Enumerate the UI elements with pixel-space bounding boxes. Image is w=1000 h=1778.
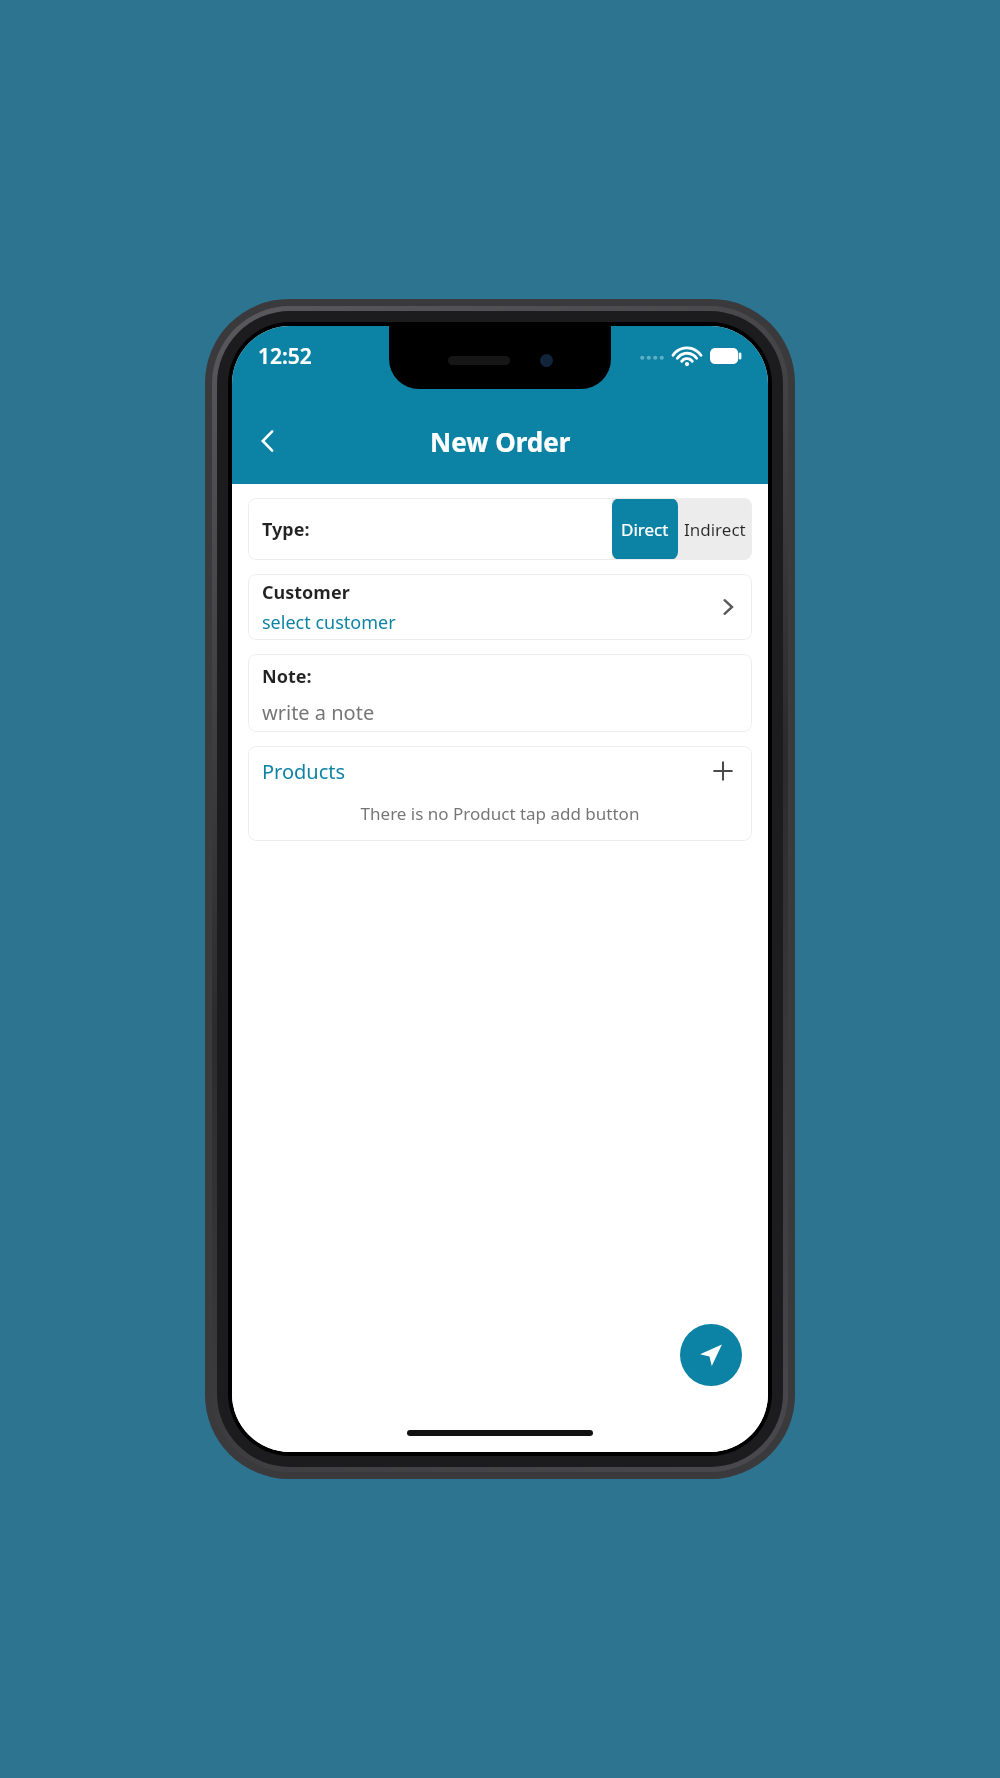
staticText: Products — [262, 758, 346, 785]
staticText: Direct — [621, 518, 669, 541]
button[interactable]: write a note — [262, 699, 738, 726]
staticText: Note: — [262, 664, 312, 689]
staticText: There is no Product tap add button — [248, 802, 752, 825]
staticText: select customer — [262, 610, 396, 635]
staticText: Type: — [262, 517, 310, 542]
staticText: Indirect — [684, 518, 746, 541]
staticText: New Order — [430, 424, 571, 459]
staticText: write a note — [262, 699, 375, 726]
staticText: 12:52 — [258, 342, 312, 371]
button[interactable]: Back — [240, 413, 296, 469]
button[interactable]: Add product — [708, 756, 738, 786]
button[interactable]: Customer — [248, 574, 752, 640]
staticText: Customer — [262, 580, 350, 605]
button[interactable]: Direct — [612, 498, 678, 560]
button[interactable]: Send order — [680, 1324, 742, 1386]
button[interactable]: Indirect — [678, 498, 752, 560]
